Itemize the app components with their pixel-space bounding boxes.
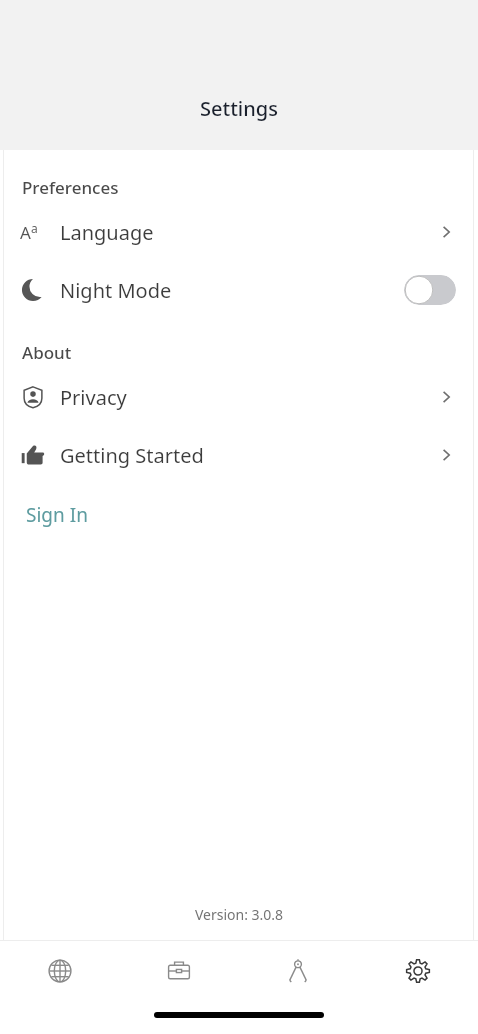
button[interactable]: Browse: [0, 941, 119, 1001]
button[interactable]: Settings: [358, 941, 478, 1001]
button[interactable]: Privacy: [0, 368, 478, 426]
staticText: Getting Started: [60, 442, 204, 469]
staticText: Version: 3.0.8: [0, 905, 478, 924]
button[interactable]: Tools: [238, 941, 358, 1001]
button[interactable]: Night Mode: [0, 261, 478, 319]
staticText: Preferences: [22, 176, 119, 199]
staticText: A: [20, 221, 31, 244]
staticText: a: [31, 220, 38, 236]
staticText: About: [22, 341, 72, 364]
button[interactable]: Getting Started: [0, 426, 478, 484]
staticText: Language: [60, 219, 154, 246]
staticText: Night Mode: [60, 277, 172, 304]
button[interactable]: Sign In: [24, 498, 90, 532]
button[interactable]: A: [0, 203, 478, 261]
staticText: Privacy: [60, 384, 127, 411]
button[interactable]: Work: [119, 941, 238, 1001]
staticText: Settings: [200, 95, 278, 122]
staticText: Sign In: [26, 502, 88, 528]
button[interactable]: Night Mode toggle: [404, 275, 456, 305]
